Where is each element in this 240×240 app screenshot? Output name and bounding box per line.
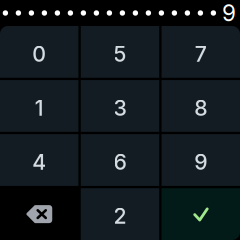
- staticText: 2: [113, 203, 126, 229]
- button[interactable]: 1: [0, 80, 78, 132]
- button[interactable]: 3: [81, 80, 159, 132]
- staticText: 9: [194, 149, 207, 175]
- staticText: 1: [35, 95, 44, 121]
- button[interactable]: Delete: [0, 188, 78, 240]
- button[interactable]: 2: [81, 188, 159, 240]
- button[interactable]: 5: [81, 26, 159, 78]
- staticText: 6: [113, 149, 126, 175]
- button[interactable]: 9: [161, 134, 240, 186]
- staticText: 5: [113, 41, 126, 67]
- staticText: 4: [32, 149, 46, 175]
- staticText: 3: [113, 95, 126, 121]
- button[interactable]: 0: [0, 26, 78, 78]
- button[interactable]: 8: [161, 80, 240, 132]
- staticText: 7: [195, 41, 207, 67]
- staticText: 9: [222, 0, 236, 27]
- button[interactable]: 6: [81, 134, 159, 186]
- button[interactable]: 7: [161, 26, 240, 78]
- staticText: 8: [194, 95, 207, 121]
- button[interactable]: Confirm: [161, 188, 240, 240]
- button[interactable]: 4: [0, 134, 78, 186]
- staticText: 0: [32, 41, 46, 67]
